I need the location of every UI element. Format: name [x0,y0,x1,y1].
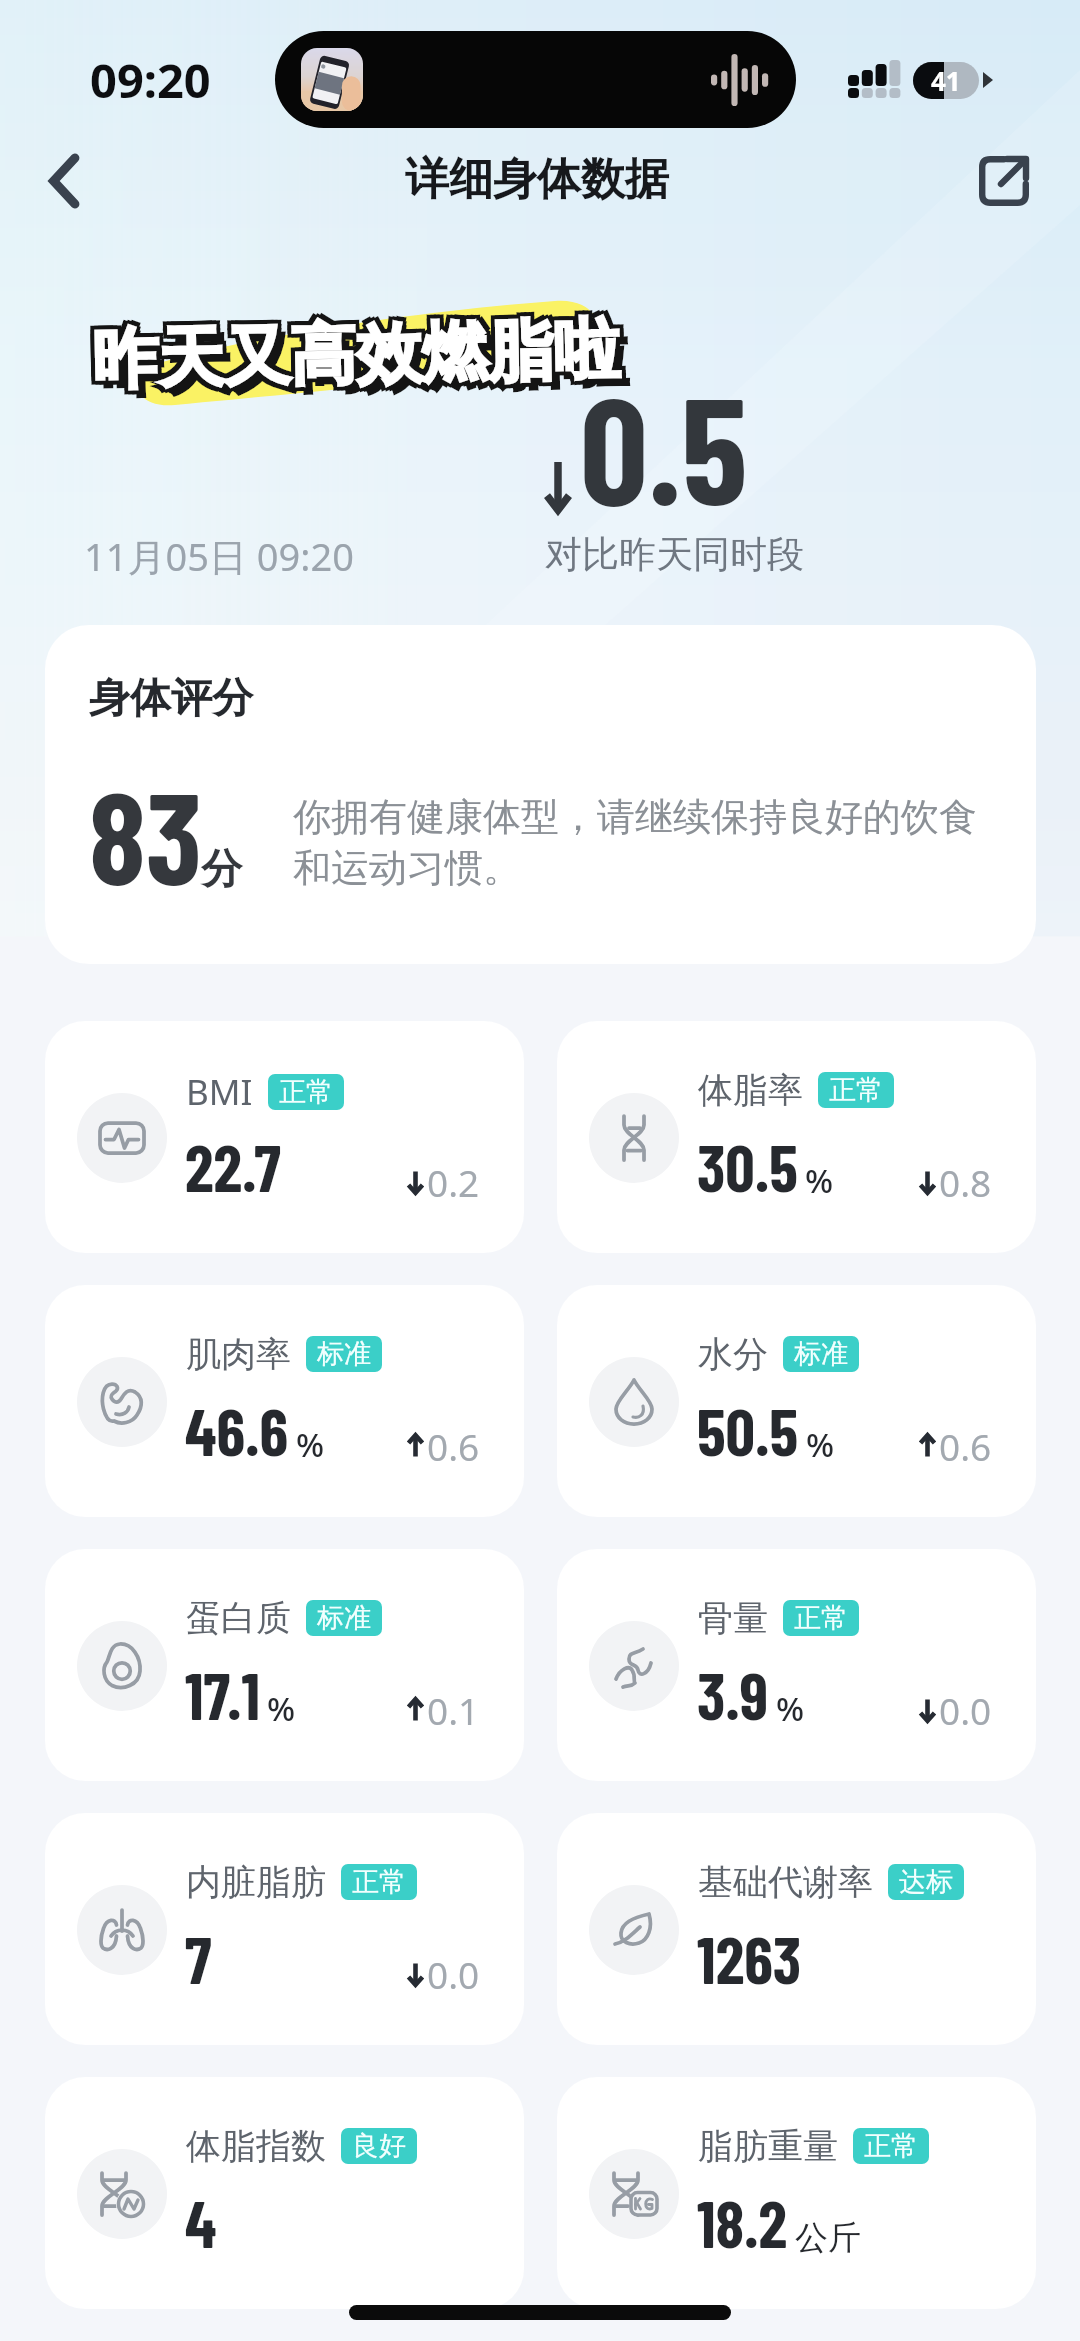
button[interactable]: BMI [45,1021,524,1253]
staticText: 0.0 [427,1949,480,1999]
staticText: % [267,1686,296,1731]
staticText: 正常 [794,1601,848,1635]
button[interactable]: 脂肪重量 [557,2077,1036,2309]
staticText: 昨天又高效燃脂啦 [87,308,617,401]
staticText: % [776,1686,805,1731]
staticText: 30.5 [697,1127,798,1205]
staticText: 11月05日 09:20 [84,530,354,582]
staticText: 昨天又高效燃脂啦 [95,308,625,401]
staticText: 蛋白质 [186,1596,291,1640]
staticText: 标准 [317,1601,371,1635]
button[interactable]: 基础代谢率 [557,1813,1036,2045]
button[interactable]: 水分 [557,1285,1036,1517]
staticText: 83 [89,756,203,911]
staticText: 体脂指数 [186,2124,326,2168]
button[interactable]: 体脂率 [557,1021,1036,1253]
staticText: 4 [185,2183,217,2261]
staticText: 正常 [279,1075,333,1109]
staticText: 17.1 [185,1655,260,1733]
staticText: % [806,1422,835,1467]
staticText: 0.1 [427,1685,480,1735]
staticText: 达标 [899,1865,953,1899]
staticText: 22.7 [185,1127,281,1205]
staticText: 分 [201,844,242,896]
staticText: 对比昨天同时段 [545,531,804,578]
staticText: 内脏脂肪 [186,1860,326,1904]
button[interactable]: 肌肉率 [45,1285,524,1517]
staticText: 你拥有健康体型，请继续保持良好的饮食和运动习惯。 [293,793,993,892]
button[interactable]: Back [23,140,105,222]
staticText: 正常 [829,1073,883,1107]
staticText: 3.9 [697,1655,769,1733]
staticText: 昨天又高效燃脂啦 [87,304,617,397]
button[interactable]: 体脂指数 [45,2077,524,2309]
staticText: 标准 [317,1337,371,1371]
staticText: 正常 [864,2129,918,2163]
button[interactable]: 内脏脂肪 [45,1813,524,2045]
button[interactable]: 骨量 [557,1549,1036,1781]
staticText: 骨量 [698,1596,768,1640]
staticText: 昨天又高效燃脂啦 [99,316,629,409]
staticText: 50.5 [697,1391,799,1469]
staticText: 良好 [352,2129,406,2163]
button[interactable]: 身体评分 [45,625,1036,964]
staticText: % [805,1158,834,1203]
staticText: 昨天又高效燃脂啦 [95,312,625,405]
staticText: 41 [931,63,961,98]
staticText: 脂肪重量 [698,2124,838,2168]
staticText: 0.6 [939,1421,992,1471]
staticText: 基础代谢率 [698,1860,873,1904]
staticText: 0.0 [939,1685,992,1735]
staticText: 7 [185,1919,212,1997]
staticText: 0.2 [427,1157,480,1207]
button[interactable]: Share [957,134,1051,228]
staticText: 正常 [352,1865,406,1899]
staticText: % [296,1422,325,1467]
staticText: 0.8 [939,1157,992,1207]
staticText: 0.5 [580,355,748,535]
staticText: 46.6 [185,1391,289,1469]
staticText: 0.6 [427,1421,480,1471]
button[interactable]: 蛋白质 [45,1549,524,1781]
staticText: 1263 [697,1919,802,1997]
staticText: 09:20 [90,48,211,112]
staticText: 肌肉率 [186,1332,291,1376]
staticText: 昨天又高效燃脂啦 [91,312,621,405]
staticText: 昨天又高效燃脂啦 [91,308,621,401]
staticText: 标准 [794,1337,848,1371]
staticText: BMI [186,1068,253,1116]
staticText: 水分 [698,1332,768,1376]
staticText: 公斤 [795,2217,861,2259]
staticText: 18.2 [697,2183,788,2261]
staticText: 昨天又高效燃脂啦 [95,304,625,397]
staticText: 体脂率 [698,1068,803,1112]
staticText: 身体评分 [89,673,253,725]
staticText: 昨天又高效燃脂啦 [87,312,617,405]
staticText: 详细身体数据 [405,152,669,207]
staticText: 昨天又高效燃脂啦 [91,304,621,397]
